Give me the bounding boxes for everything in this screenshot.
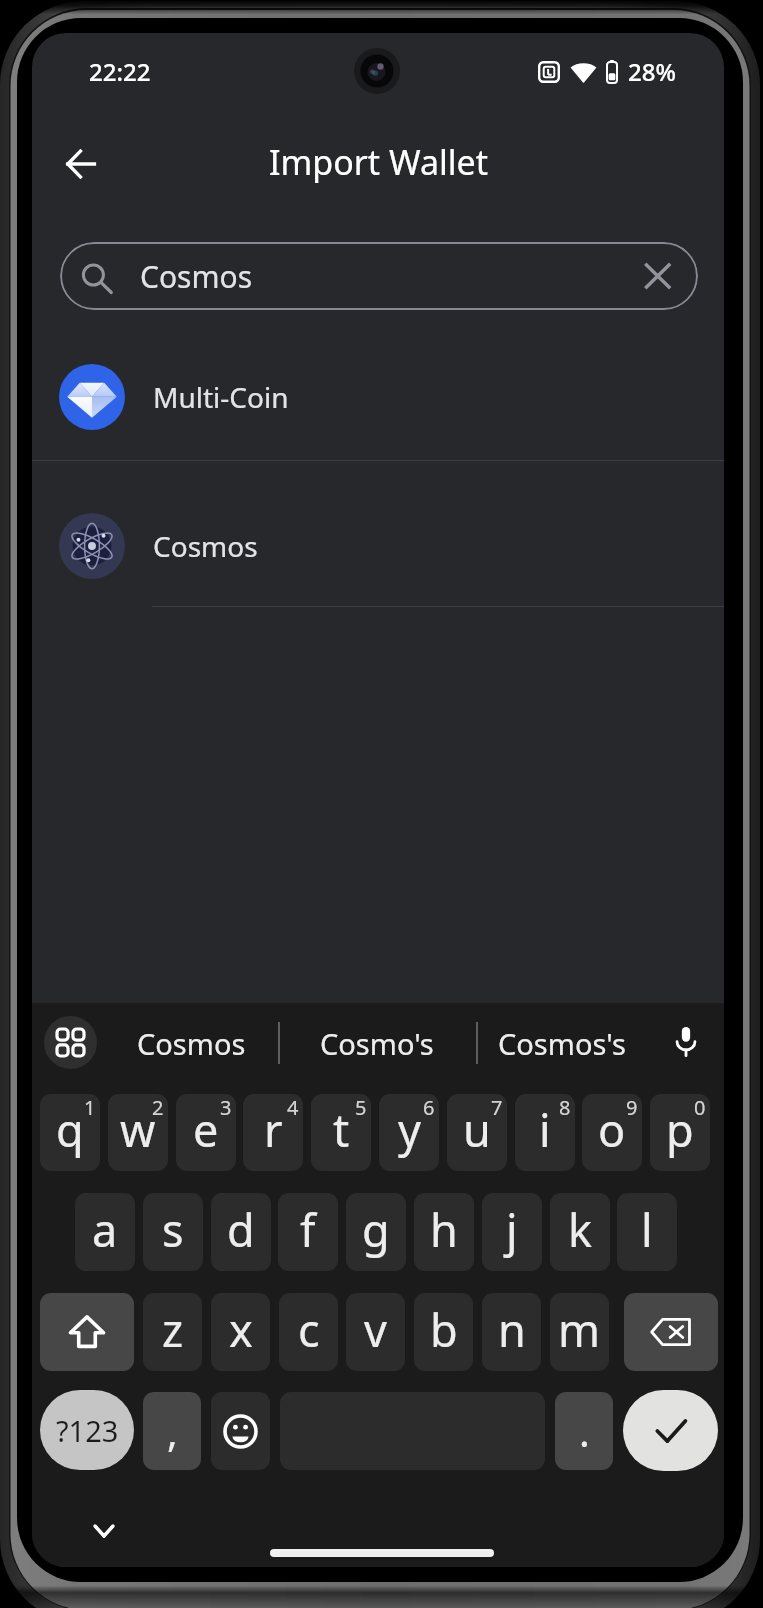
button[interactable]: t [311,1094,371,1171]
button[interactable]: d [211,1193,271,1271]
button[interactable]: Keyboard toolbar [44,1016,97,1069]
staticText: Cosmos's [498,1024,626,1063]
button[interactable]: w [108,1094,168,1171]
staticText: 22:22 [89,55,151,88]
staticText: 0 [694,1094,706,1121]
staticText: y [398,1099,421,1160]
staticText: Multi-Coin [153,378,289,416]
staticText: l [641,1199,653,1260]
button[interactable]: b [414,1293,473,1371]
staticText: d [227,1199,255,1260]
button[interactable]: v [346,1293,405,1371]
staticText: r [264,1099,283,1160]
button[interactable]: . [555,1392,613,1470]
staticText: Cosmos [140,256,253,297]
button[interactable]: Clear search [628,247,686,305]
staticText: 9 [626,1094,638,1121]
staticText: 7 [491,1094,503,1121]
button[interactable]: o [582,1094,642,1171]
staticText: v [364,1299,387,1360]
staticText: 4 [287,1094,299,1121]
staticText: a [92,1199,118,1260]
staticText: n [498,1299,526,1360]
button[interactable]: Emoji [211,1392,270,1470]
staticText: . [579,1404,590,1458]
button[interactable]: m [550,1293,609,1371]
staticText: m [558,1299,601,1360]
button[interactable]: Back [50,133,112,195]
button[interactable]: Voice input [655,1010,717,1072]
button[interactable]: Backspace [624,1293,718,1371]
staticText: , [167,1404,178,1458]
button[interactable]: ?123 [40,1390,134,1470]
staticText: b [430,1299,458,1360]
button[interactable]: Enter [623,1390,718,1471]
button[interactable]: g [346,1193,406,1271]
button[interactable]: a [75,1193,135,1271]
button[interactable]: c [279,1293,338,1371]
staticText: h [430,1199,458,1260]
staticText: o [598,1099,626,1160]
button[interactable]: i [515,1094,575,1171]
button[interactable]: h [414,1193,474,1271]
staticText: x [229,1299,253,1360]
button[interactable]: Cosmo's [285,1007,469,1079]
staticText: 1 [84,1094,96,1121]
button[interactable]: l [617,1193,677,1271]
button[interactable]: u [447,1094,507,1171]
button[interactable]: z [143,1293,202,1371]
button[interactable]: Cosmos [99,1007,283,1079]
staticText: 28% [628,55,676,88]
staticText: g [362,1199,390,1260]
staticText: 8 [559,1094,571,1121]
staticText: w [120,1099,156,1160]
button[interactable]: f [278,1193,338,1271]
button[interactable]: Cosmos [32,496,724,596]
staticText: e [193,1099,219,1160]
staticText: p [666,1099,694,1160]
staticText: z [162,1299,184,1360]
button[interactable]: , [143,1392,201,1470]
staticText: f [300,1199,316,1260]
staticText: 2 [152,1094,164,1121]
staticText: q [56,1099,84,1160]
button[interactable]: Hide keyboard [82,1509,126,1553]
staticText: i [539,1099,551,1160]
button[interactable]: Multi-Coin [32,347,724,447]
staticText: 6 [423,1094,435,1121]
staticText: s [162,1199,184,1260]
staticText: ?123 [56,1411,119,1450]
button[interactable]: y [379,1094,439,1171]
button[interactable]: j [482,1193,542,1271]
button[interactable]: s [143,1193,203,1271]
staticText: u [463,1099,491,1160]
staticText: Import Wallet [269,139,488,185]
staticText: 5 [355,1094,367,1121]
staticText: Cosmos [137,1024,246,1063]
button[interactable]: p [650,1094,710,1171]
staticText: j [506,1199,518,1260]
button[interactable]: k [550,1193,610,1271]
button[interactable]: Cosmos [60,242,698,310]
button[interactable]: r [243,1094,303,1171]
staticText: t [333,1099,350,1160]
button[interactable]: q [40,1094,100,1171]
button[interactable]: Cosmos's [470,1007,654,1079]
button[interactable]: x [211,1293,270,1371]
button[interactable]: n [482,1293,541,1371]
staticText: Cosmo's [320,1024,434,1063]
staticText: Cosmos [153,527,258,565]
button[interactable]: Shift [40,1293,134,1371]
staticText: 3 [220,1094,232,1121]
staticText: c [298,1299,320,1360]
staticText: k [568,1199,593,1260]
button[interactable]: e [176,1094,236,1171]
